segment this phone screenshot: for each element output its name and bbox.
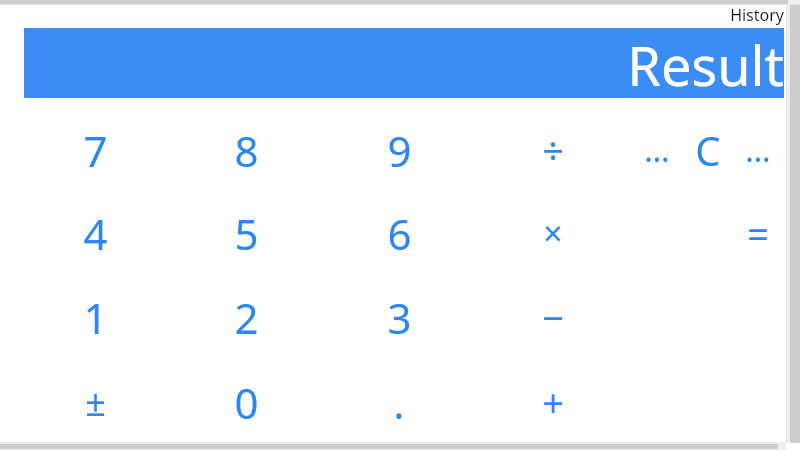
staticText: …	[644, 128, 670, 172]
staticText: ±	[85, 378, 106, 427]
button[interactable]: C	[680, 112, 736, 188]
button[interactable]: −	[501, 279, 605, 355]
staticText: 2	[234, 289, 259, 346]
staticText: 6	[387, 205, 412, 262]
button[interactable]: 0	[194, 364, 298, 440]
button[interactable]: 9	[347, 112, 451, 188]
button[interactable]: ±	[43, 364, 147, 440]
staticText: Result	[627, 28, 784, 98]
staticText: +	[542, 376, 564, 428]
button[interactable]: 8	[194, 112, 298, 188]
button[interactable]: 1	[43, 279, 147, 355]
staticText: 7	[83, 122, 108, 179]
staticText: 9	[387, 122, 412, 179]
staticText: 5	[234, 205, 259, 262]
staticText: −	[542, 291, 564, 343]
staticText: C	[695, 123, 721, 177]
staticText: ÷	[542, 124, 564, 176]
staticText: 3	[387, 289, 412, 346]
button[interactable]: …	[631, 112, 683, 188]
button[interactable]: =	[730, 195, 786, 271]
staticText: 1	[83, 289, 108, 346]
staticText: .	[393, 374, 405, 431]
button[interactable]: 7	[43, 112, 147, 188]
staticText: History	[730, 4, 784, 26]
button[interactable]: …	[732, 112, 784, 188]
button[interactable]: .	[347, 364, 451, 440]
staticText: …	[745, 128, 771, 172]
button[interactable]: 3	[347, 279, 451, 355]
button[interactable]: 2	[194, 279, 298, 355]
button[interactable]: 5	[194, 195, 298, 271]
staticText: ×	[543, 210, 563, 256]
button[interactable]: +	[501, 364, 605, 440]
staticText: =	[747, 207, 769, 259]
button[interactable]: ×	[501, 195, 605, 271]
button[interactable]: History	[700, 4, 784, 26]
button[interactable]: Result	[24, 28, 784, 98]
button[interactable]: 6	[347, 195, 451, 271]
staticText: 4	[83, 205, 108, 262]
staticText: 8	[234, 122, 259, 179]
button[interactable]: 4	[43, 195, 147, 271]
staticText: 0	[234, 374, 259, 431]
button[interactable]: ÷	[501, 112, 605, 188]
